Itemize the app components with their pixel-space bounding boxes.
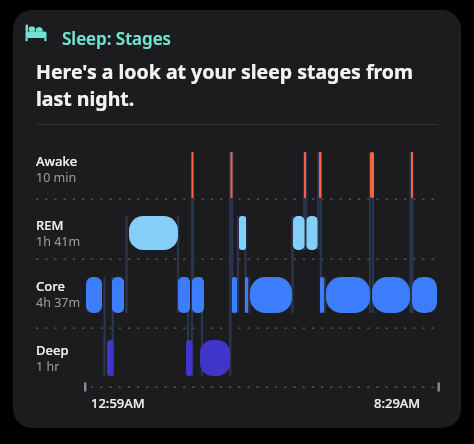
button[interactable]: Sleep Stages chart card: [0, 0, 474, 444]
